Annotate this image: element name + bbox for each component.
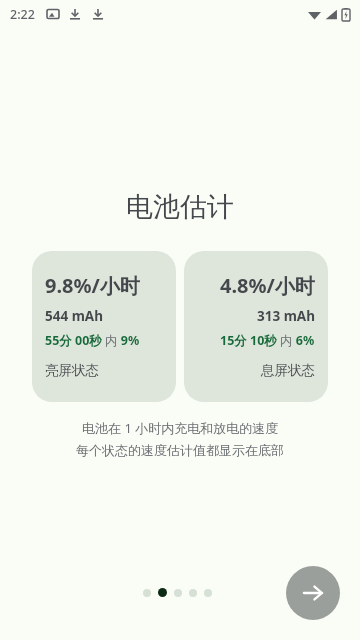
- button[interactable]: 4.8%/小时: [184, 251, 328, 402]
- staticText: 电池在 1 小时内充电和放电的速度: [82, 419, 279, 437]
- staticText: 每个状态的速度估计值都显示在底部: [76, 442, 284, 458]
- staticText: 9.8%/小时: [45, 272, 140, 299]
- staticText: 4.8%/小时: [220, 272, 315, 299]
- staticText: 313 mAh: [257, 307, 315, 325]
- staticText: 亮屏状态: [45, 362, 99, 379]
- staticText: 息屏状态: [261, 362, 315, 379]
- staticText: 55分 00秒 内 9%: [45, 332, 140, 349]
- staticText: 2:22: [10, 6, 35, 23]
- staticText: 544 mAh: [45, 307, 103, 325]
- button[interactable]: 9.8%/小时: [32, 251, 176, 402]
- button[interactable]: Next: [286, 566, 340, 620]
- staticText: 15分 10秒 内 6%: [220, 332, 315, 349]
- staticText: 电池估计: [126, 190, 234, 224]
